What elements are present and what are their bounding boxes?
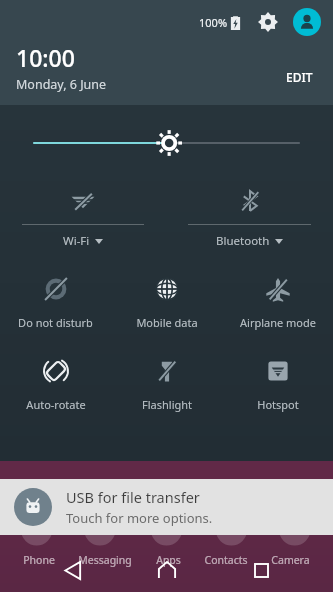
staticText: 100% [199,15,228,30]
button[interactable]: Settings [255,9,281,35]
button[interactable]: Wi-Fi [0,180,166,249]
button[interactable]: Mobile data [111,264,222,330]
button[interactable]: Home [145,548,189,592]
staticText: Apps [156,553,181,567]
staticText: Mobile data [136,315,198,330]
button[interactable]: EDIT [282,66,317,88]
staticText: Contacts [204,553,248,567]
staticText: Camera [271,553,310,567]
button[interactable]: Flashlight [111,346,222,412]
staticText: Auto-rotate [26,397,86,412]
staticText: Flashlight [142,397,192,412]
staticText: Bluetooth [216,233,270,249]
button[interactable]: Brightness [0,105,333,180]
button[interactable]: Hotspot [222,346,333,412]
staticText: 10:00 [16,42,75,73]
button[interactable]: Do not disturb [0,264,111,330]
staticText: EDIT [286,69,313,85]
button[interactable]: Bluetooth [166,180,333,249]
button[interactable]: Back [50,548,94,592]
staticText: Hotspot [257,397,299,412]
staticText: Wi-Fi [63,233,90,249]
staticText: Airplane mode [240,315,316,330]
button[interactable]: User profile [293,8,321,36]
button[interactable]: Airplane mode [222,264,333,330]
staticText: Monday, 6 June [16,76,107,93]
button[interactable]: Auto-rotate [0,346,111,412]
button[interactable]: Recent apps [239,548,283,592]
button[interactable]: USB for file transfer [0,479,333,535]
staticText: Phone [23,553,55,567]
staticText: Touch for more options. [66,509,213,527]
staticText: Do not disturb [18,315,93,330]
staticText: Messaging [78,553,132,567]
staticText: USB for file transfer [66,487,200,507]
